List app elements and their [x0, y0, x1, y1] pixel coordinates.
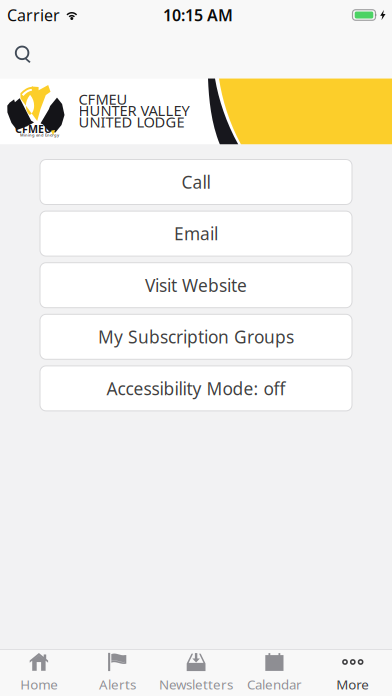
button[interactable]: Visit Website	[40, 263, 352, 308]
staticText: CFMEU	[15, 122, 52, 136]
staticText: Calendar	[247, 675, 302, 693]
staticText: Visit Website	[145, 274, 247, 297]
staticText: More	[336, 675, 369, 693]
button[interactable]: Home	[0, 650, 78, 696]
button[interactable]: Email	[40, 211, 352, 256]
staticText: CFMEU	[78, 89, 127, 109]
staticText: Call	[181, 170, 210, 193]
staticText: Email	[174, 222, 218, 245]
staticText: Carrier	[7, 4, 60, 26]
staticText: Alerts	[99, 675, 136, 693]
staticText: HUNTER VALLEY	[78, 101, 189, 120]
staticText: Accessibility Mode: off	[106, 377, 285, 400]
staticText: UNITED LODGE	[78, 112, 184, 132]
button[interactable]: Search	[1, 32, 45, 76]
staticText: Mining and Energy	[20, 132, 59, 137]
button[interactable]: Accessibility Mode: off	[40, 366, 352, 411]
button[interactable]: More	[314, 650, 392, 696]
staticText: Home	[20, 675, 58, 693]
button[interactable]: Calendar	[235, 650, 314, 696]
button[interactable]: My Subscription Groups	[40, 314, 352, 359]
button[interactable]: Newsletters	[157, 650, 235, 696]
button[interactable]: Alerts	[78, 650, 157, 696]
button[interactable]: Call	[40, 159, 352, 204]
staticText: Newsletters	[159, 675, 233, 693]
staticText: My Subscription Groups	[98, 325, 294, 348]
staticText: 10:15 AM	[163, 4, 233, 26]
